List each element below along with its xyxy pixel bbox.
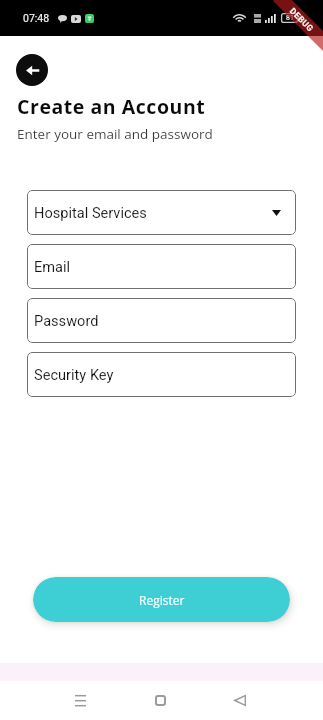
staticText: Register [139,592,185,608]
button[interactable]: Password [27,298,296,343]
button[interactable]: Home [140,685,181,716]
staticText: 81 [286,14,294,22]
staticText: Create an Account [17,93,206,120]
button[interactable]: Recents [60,685,101,716]
button[interactable]: Back [16,54,48,86]
button[interactable]: Security Key [27,352,296,397]
staticText: DEBUG [288,6,316,34]
staticText: Enter your email and password [17,125,213,143]
button[interactable]: Register [33,577,290,622]
staticText: Hospital Services [34,204,147,221]
button[interactable]: Back [219,685,260,716]
button[interactable]: Email [27,244,296,289]
staticText: Security Key [34,366,114,383]
staticText: 07:48 [23,12,50,24]
button[interactable]: Hospital Services [27,190,296,235]
staticText: Password [34,312,99,329]
staticText: Email [34,258,71,275]
